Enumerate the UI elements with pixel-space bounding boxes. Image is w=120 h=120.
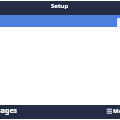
button[interactable] [117,18,120,28]
staticText: Messages [0,106,18,116]
staticText: Setup [51,2,69,10]
staticText: Menu [113,107,120,115]
button[interactable]: Messages [0,105,20,119]
button[interactable]: Menu [104,105,120,119]
